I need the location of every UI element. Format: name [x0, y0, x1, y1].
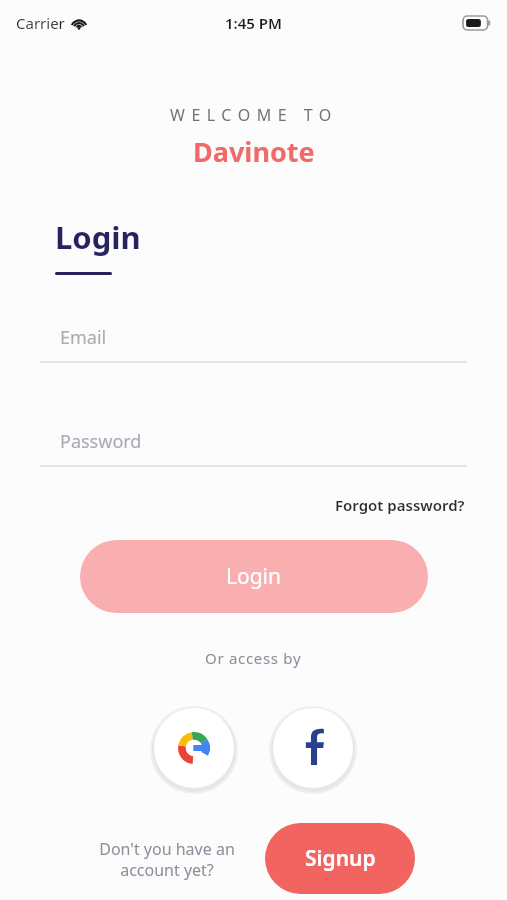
- staticText: 1:45 PM: [225, 13, 282, 33]
- button[interactable]: Forgot password?: [333, 492, 467, 518]
- staticText: Login: [226, 562, 282, 591]
- staticText: Or access by: [205, 648, 302, 668]
- button[interactable]: Sign in with Facebook: [273, 708, 353, 788]
- staticText: Don't you have an account yet?: [78, 838, 256, 881]
- button[interactable]: Email input field: [40, 325, 467, 363]
- staticText: Forgot password?: [335, 495, 465, 515]
- button[interactable]: Sign in with Google: [154, 708, 234, 788]
- staticText: WELCOME TO: [170, 104, 338, 126]
- button[interactable]: Login: [80, 540, 428, 613]
- staticText: Signup: [305, 844, 376, 873]
- staticText: Davinote: [193, 133, 315, 170]
- button[interactable]: Don't you have an account yet?: [78, 835, 256, 884]
- staticText: Login: [55, 216, 141, 258]
- staticText: Email: [60, 325, 107, 350]
- staticText: Password: [60, 429, 142, 454]
- button[interactable]: Password input field: [40, 429, 467, 467]
- button[interactable]: Signup: [265, 823, 415, 894]
- staticText: Carrier: [16, 13, 65, 33]
